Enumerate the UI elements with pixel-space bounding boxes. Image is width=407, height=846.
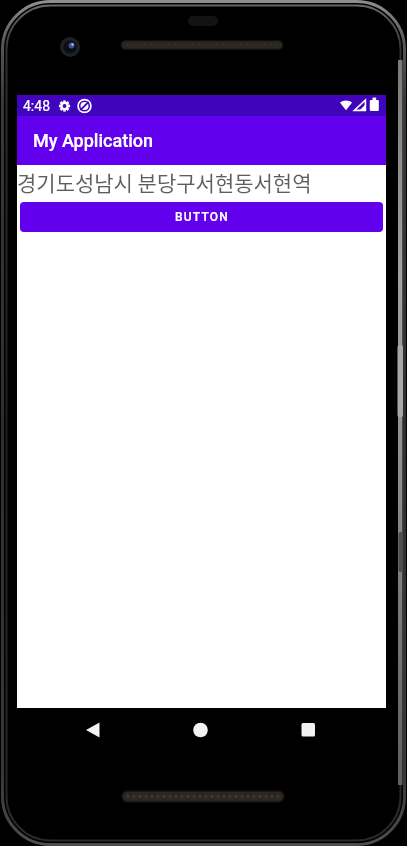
button[interactable] (17, 708, 140, 751)
button[interactable] (263, 708, 386, 751)
staticText: BUTTON (175, 210, 229, 224)
button[interactable]: BUTTON (20, 202, 383, 232)
button[interactable] (140, 708, 263, 751)
staticText: My Application (33, 130, 154, 151)
staticText: 경기도성남시 분당구서현동서현역 (17, 167, 312, 197)
staticText: 4:48 (23, 98, 50, 114)
